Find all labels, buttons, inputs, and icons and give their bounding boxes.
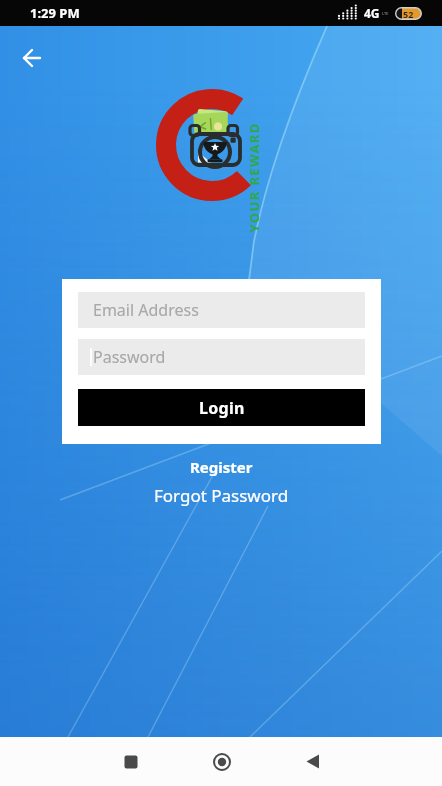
staticText: LTE <box>382 11 389 16</box>
staticText: 4G <box>364 5 380 21</box>
button[interactable] <box>176 737 267 786</box>
button[interactable] <box>85 737 176 786</box>
button[interactable]: Email Address <box>78 292 365 328</box>
staticText: 52 <box>403 8 414 20</box>
button[interactable]: Login <box>78 389 365 426</box>
staticText: Login <box>199 397 245 419</box>
button[interactable]: Register <box>190 457 253 477</box>
staticText: 1:29 PM <box>30 4 80 22</box>
button[interactable]: Password <box>78 339 365 375</box>
button[interactable] <box>8 34 56 82</box>
staticText: Email Address <box>93 299 199 321</box>
button[interactable] <box>267 737 358 786</box>
staticText: Password <box>93 346 166 368</box>
staticText: YOUR REWARD <box>244 121 262 232</box>
button[interactable]: Forgot Password <box>154 484 289 507</box>
